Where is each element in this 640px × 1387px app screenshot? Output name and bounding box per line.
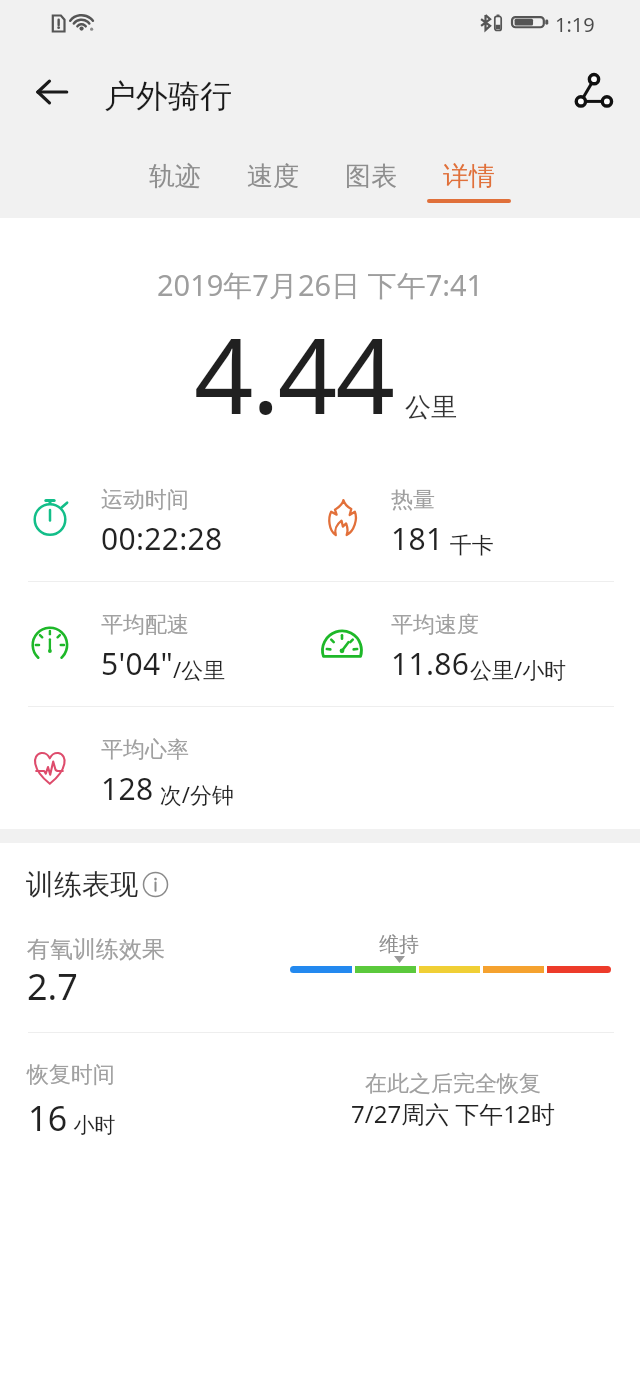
staticText: /公里 xyxy=(173,654,226,684)
staticText: 11.86 xyxy=(391,643,470,684)
button[interactable]: Back xyxy=(22,62,81,121)
staticText: 4.44 xyxy=(194,303,394,445)
staticText: 16 xyxy=(28,1095,68,1141)
staticText: 户外骑行 xyxy=(104,76,232,116)
staticText: 1:19 xyxy=(555,11,595,38)
staticText: 公里/小时 xyxy=(470,654,567,684)
staticText: 速度 xyxy=(247,160,299,193)
staticText: 181 xyxy=(391,518,444,559)
staticText: 平均心率 xyxy=(101,736,189,764)
staticText: 公里 xyxy=(405,391,457,424)
staticText: 平均速度 xyxy=(391,611,479,639)
staticText: 运动时间 xyxy=(101,486,189,514)
staticText: 在此之后完全恢复 xyxy=(365,1070,541,1098)
staticText: 训练表现 xyxy=(26,867,138,902)
button[interactable]: 速度 xyxy=(224,160,322,214)
staticText: 次/分钟 xyxy=(154,779,234,809)
staticText: 详情 xyxy=(443,160,495,193)
staticText: 恢复时间 xyxy=(27,1061,115,1089)
button[interactable]: 图表 xyxy=(322,160,420,214)
button[interactable]: 训练表现 xyxy=(26,867,168,902)
other: Info xyxy=(143,872,168,897)
staticText: 维持 xyxy=(379,932,419,957)
staticText: 平均配速 xyxy=(101,611,189,639)
staticText: 2019年7月26日 下午7:41 xyxy=(157,265,484,305)
button[interactable]: Share xyxy=(565,61,623,119)
staticText: 128 xyxy=(101,768,154,809)
staticText: 小时 xyxy=(68,1110,116,1139)
staticText: 2.7 xyxy=(27,962,78,1011)
staticText: 图表 xyxy=(345,160,397,193)
button[interactable]: 详情 xyxy=(420,160,518,214)
staticText: 有氧训练效果 xyxy=(27,935,165,964)
staticText: 千卡 xyxy=(444,529,494,559)
button[interactable]: 轨迹 xyxy=(126,160,224,214)
staticText: 轨迹 xyxy=(149,160,201,193)
staticText: 00:22:28 xyxy=(101,518,223,559)
staticText: 5'04" xyxy=(101,643,173,684)
staticText: 热量 xyxy=(391,486,435,514)
staticText: 7/27周六 下午12时 xyxy=(351,1097,555,1130)
